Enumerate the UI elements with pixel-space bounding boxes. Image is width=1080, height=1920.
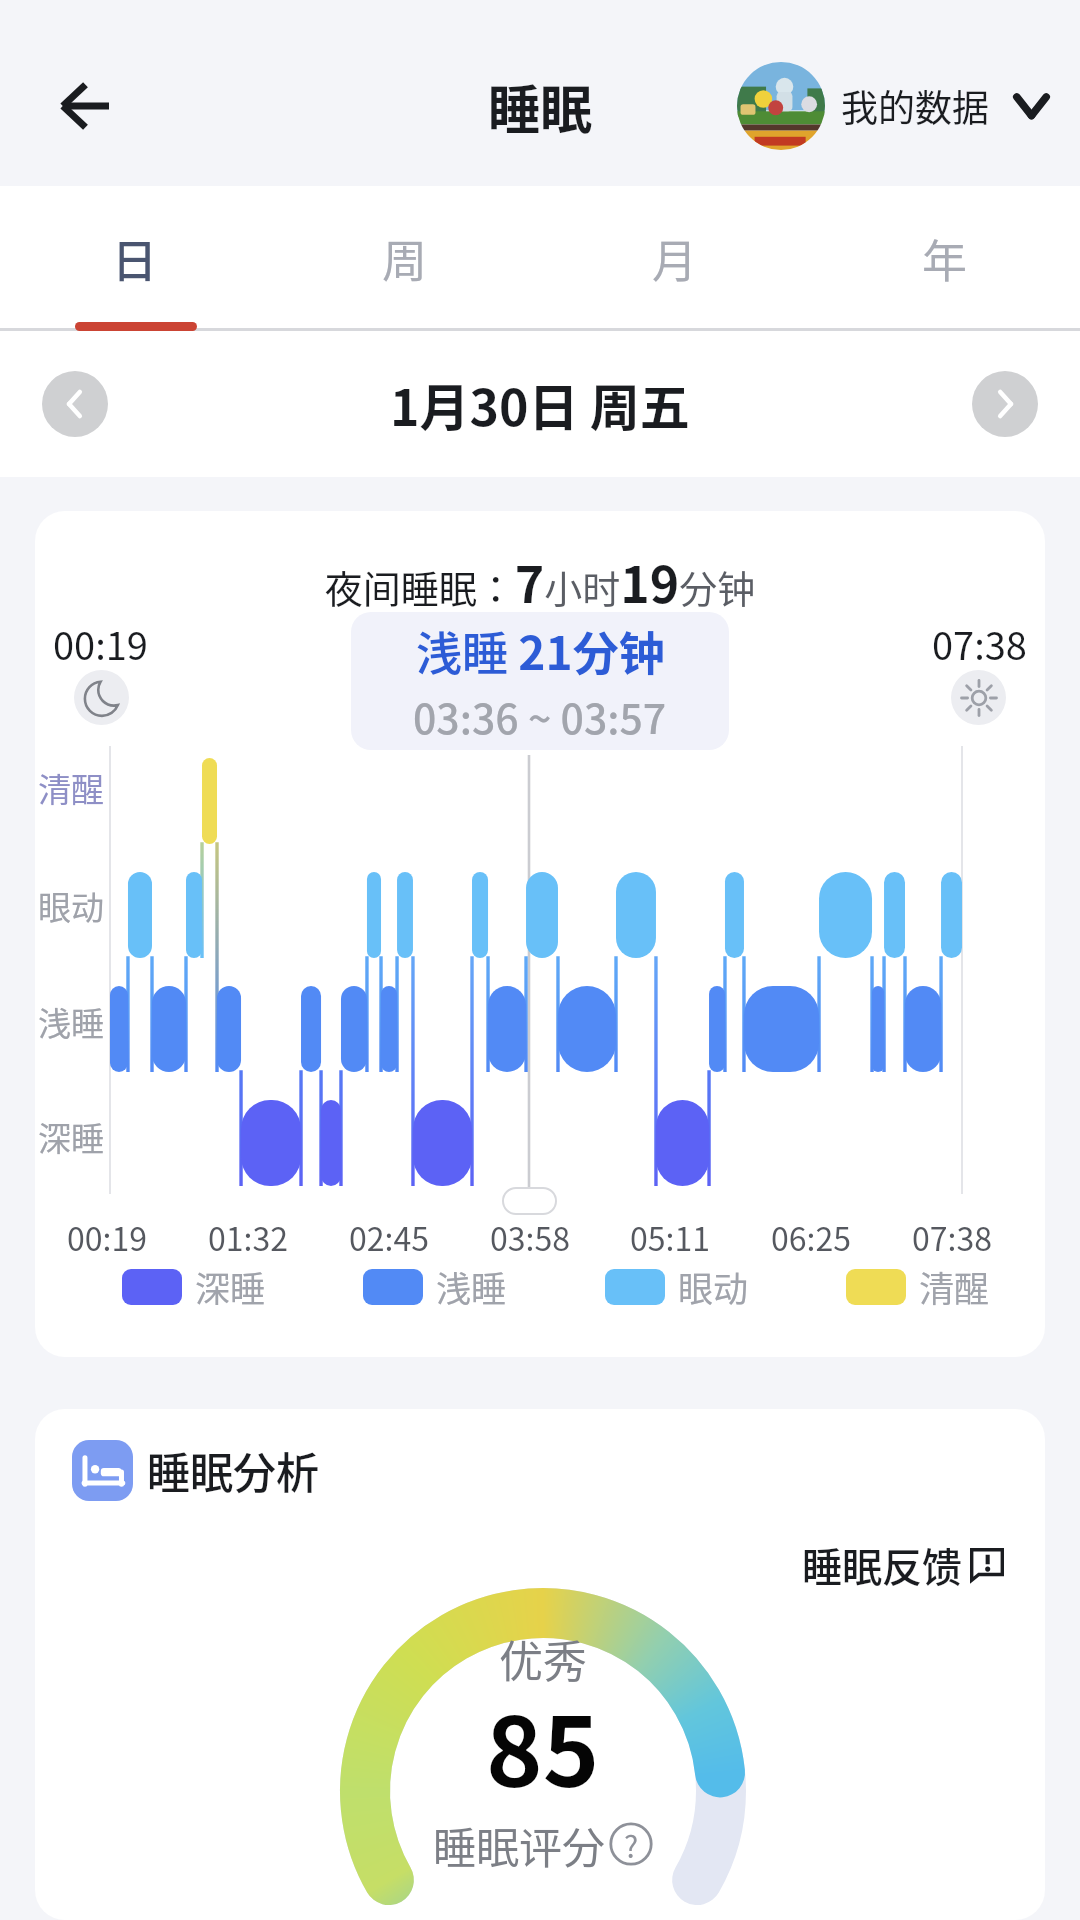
staticText: 浅睡: [436, 1261, 507, 1312]
staticText: 06:25: [771, 1214, 851, 1260]
staticText: 03:36 ~ 03:57: [413, 686, 667, 745]
button[interactable]: 日: [0, 186, 270, 331]
button[interactable]: 睡眠反馈: [802, 1536, 1004, 1594]
staticText: 浅睡 21分钟: [416, 617, 665, 684]
staticText: 深睡: [195, 1261, 266, 1312]
staticText: 眼动: [678, 1261, 749, 1312]
button[interactable]: 月: [540, 186, 810, 331]
staticText: 睡眠分析: [147, 1439, 319, 1501]
staticText: 05:11: [630, 1214, 710, 1260]
button[interactable]: 睡眠分析: [72, 1439, 319, 1501]
button[interactable]: 年: [810, 186, 1080, 331]
staticText: 我的数据: [841, 79, 989, 133]
staticText: 07:38: [912, 1214, 992, 1260]
staticText: ?: [624, 1823, 639, 1866]
staticText: 85: [486, 1676, 600, 1796]
staticText: 00:19: [67, 1214, 147, 1260]
button[interactable]: Previous day: [42, 371, 108, 437]
staticText: 浅睡: [38, 998, 104, 1046]
staticText: 眼动: [38, 882, 104, 930]
staticText: 年: [922, 226, 968, 291]
button[interactable]: 我的数据: [737, 62, 1050, 150]
staticText: 02:45: [349, 1214, 429, 1260]
button[interactable]: Back: [24, 46, 144, 166]
staticText: 清醒: [919, 1261, 990, 1312]
button[interactable]: 周: [270, 186, 540, 331]
staticText: 01:32: [208, 1214, 288, 1260]
staticText: 07:38: [932, 616, 1027, 671]
staticText: 清醒: [38, 764, 104, 812]
button[interactable]: Next day: [972, 371, 1038, 437]
staticText: 睡眠反馈: [802, 1536, 962, 1594]
staticText: 月: [652, 226, 698, 291]
staticText: 03:58: [490, 1214, 570, 1260]
staticText: 睡眠: [488, 69, 593, 144]
staticText: 1月30日 周五: [390, 368, 690, 440]
staticText: 优秀: [499, 1627, 587, 1687]
staticText: 深睡: [38, 1113, 104, 1161]
staticText: 夜间睡眠：7小时19分钟: [35, 545, 1045, 617]
staticText: 00:19: [53, 616, 148, 671]
staticText: 周: [382, 226, 428, 291]
staticText: 日: [112, 226, 158, 291]
staticText: 睡眠评分: [433, 1814, 605, 1874]
